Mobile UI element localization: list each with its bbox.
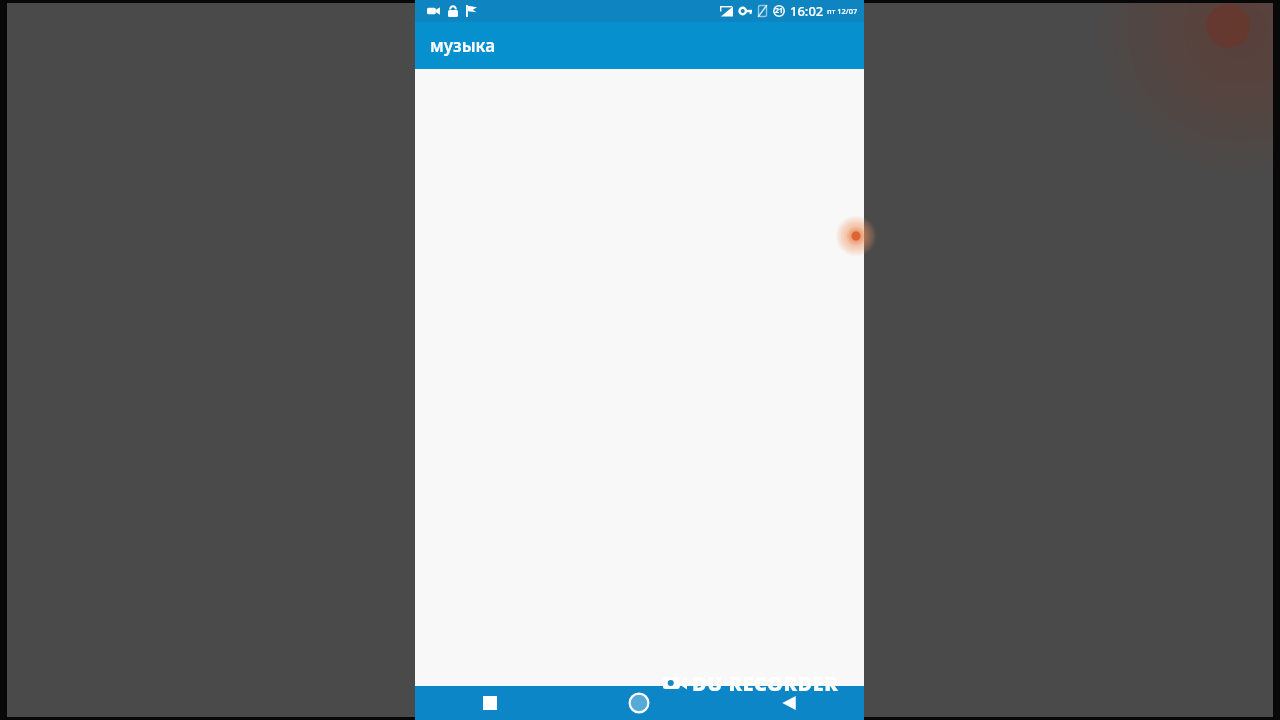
button[interactable]: Recorder floating button bbox=[836, 216, 876, 256]
staticText: 16:02 bbox=[790, 2, 824, 20]
staticText: DU RECORDER bbox=[692, 670, 839, 696]
staticText: 21 bbox=[775, 6, 784, 16]
button[interactable]: Recent apps bbox=[415, 686, 564, 720]
button[interactable]: Home bbox=[564, 686, 714, 720]
staticText: пт 12/07 bbox=[827, 6, 858, 16]
button[interactable]: Back bbox=[714, 686, 864, 720]
staticText: музыка bbox=[430, 34, 496, 57]
